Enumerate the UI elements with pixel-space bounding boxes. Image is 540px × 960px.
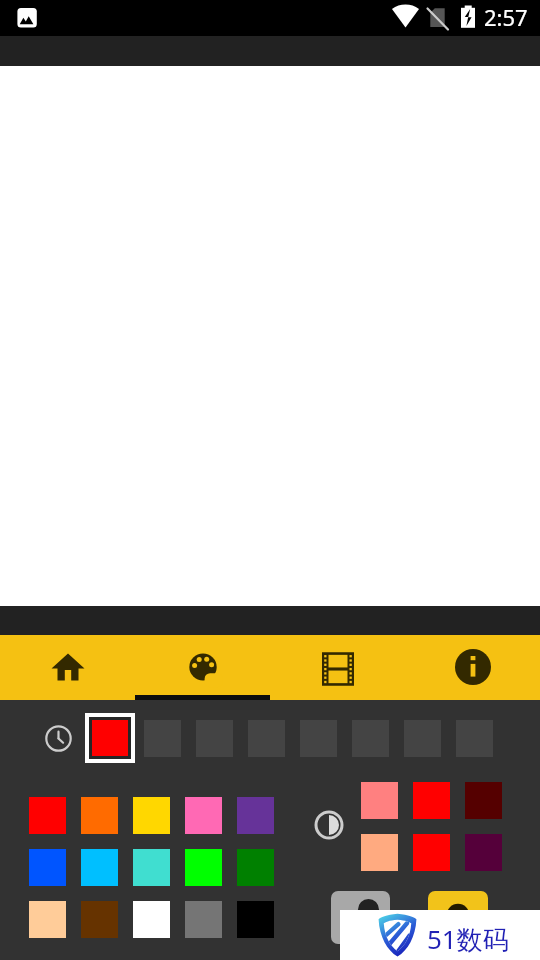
button[interactable]: Home bbox=[0, 635, 135, 700]
button[interactable]: Info bbox=[405, 635, 540, 700]
button[interactable]: Brush size bbox=[428, 891, 488, 944]
button[interactable]: Film bbox=[270, 635, 405, 700]
button[interactable]: Contrast bbox=[314, 810, 344, 840]
button[interactable]: Recent colours bbox=[44, 724, 73, 753]
staticText: 51数码 bbox=[427, 921, 509, 957]
staticText: 2:57 bbox=[484, 2, 528, 32]
button[interactable]: Palette bbox=[135, 635, 270, 700]
button[interactable]: Smudge tool bbox=[331, 891, 390, 944]
